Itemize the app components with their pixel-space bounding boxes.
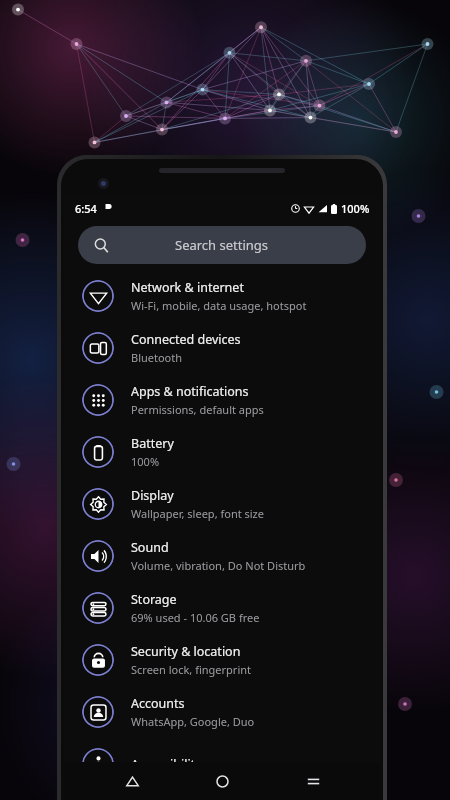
staticText: 6:54 (75, 201, 97, 216)
staticText: Wallpaper, sleep, font size (131, 506, 264, 521)
button[interactable]: Sound (64, 530, 380, 582)
staticText: Display (131, 487, 174, 504)
staticText: Volume, vibration, Do Not Disturb (131, 558, 306, 573)
staticText: Accessibility (131, 756, 202, 773)
button[interactable]: Home (199, 762, 245, 800)
button[interactable]: Battery (64, 426, 380, 478)
staticText: 100% (341, 201, 370, 216)
staticText: Sound (131, 539, 169, 556)
button[interactable]: Back (109, 762, 155, 800)
button[interactable]: Accounts (64, 686, 380, 738)
staticText: Wi-Fi, mobile, data usage, hotspot (131, 298, 307, 313)
button[interactable]: Security & location (64, 634, 380, 686)
staticText: 69% used - 10.06 GB free (131, 610, 260, 625)
staticText: Bluetooth (131, 350, 183, 365)
staticText: Search settings (175, 236, 269, 254)
button[interactable]: Accessibility (64, 738, 380, 790)
staticText: Storage (131, 591, 177, 608)
button[interactable]: Apps & notifications (64, 374, 380, 426)
button[interactable]: Display (64, 478, 380, 530)
staticText: Screen lock, fingerprint (131, 662, 252, 677)
staticText: Connected devices (131, 331, 241, 348)
staticText: Permissions, default apps (131, 402, 264, 417)
staticText: Accounts (131, 695, 185, 712)
staticText: WhatsApp, Google, Duo (131, 714, 255, 729)
staticText: 100% (131, 454, 160, 469)
button[interactable]: Storage (64, 582, 380, 634)
staticText: Apps & notifications (131, 383, 249, 400)
button[interactable]: Search settings (78, 226, 366, 264)
staticText: Security & location (131, 643, 241, 660)
staticText: Network & internet (131, 279, 244, 296)
button[interactable]: Connected devices (64, 322, 380, 374)
button[interactable]: Network & internet (64, 270, 380, 322)
staticText: Battery (131, 435, 174, 452)
button[interactable]: Recent apps (290, 762, 336, 800)
